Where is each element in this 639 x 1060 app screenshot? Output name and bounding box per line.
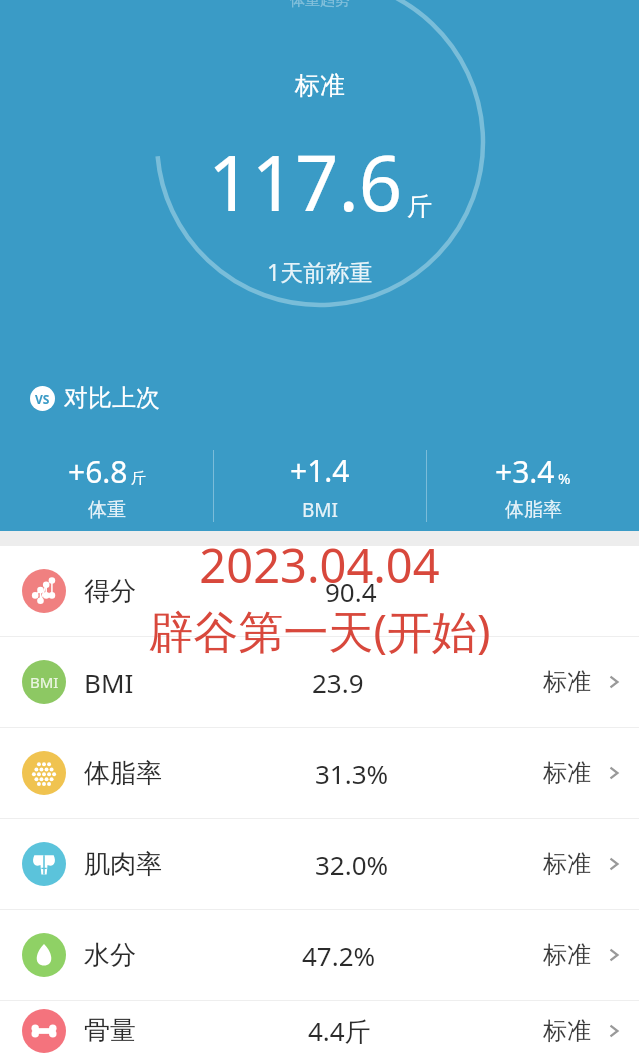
staticText: 标准 xyxy=(543,667,591,697)
staticText: 32.0% xyxy=(315,847,389,882)
staticText: +1.4 xyxy=(290,450,350,491)
staticText: BMI xyxy=(84,665,134,700)
button[interactable]: 体脂率 xyxy=(0,728,639,818)
staticText: 体脂率 xyxy=(505,498,562,522)
staticText: 1天前称重 xyxy=(267,256,373,287)
staticText: 标准 xyxy=(543,849,591,879)
staticText: BMI xyxy=(30,672,59,692)
button[interactable]: 骨量 xyxy=(0,1001,639,1060)
staticText: 标准 xyxy=(543,758,591,788)
staticText: % xyxy=(558,468,571,488)
staticText: 23.9 xyxy=(312,665,364,700)
button[interactable]: 肌肉率 xyxy=(0,819,639,909)
staticText: 肌肉率 xyxy=(84,848,162,881)
button[interactable]: 得分 xyxy=(0,546,639,636)
staticText: 31.3% xyxy=(315,756,389,791)
staticText: 47.2% xyxy=(302,938,376,973)
staticText: 水分 xyxy=(84,939,136,972)
staticText: 2023.04.04 xyxy=(199,533,440,597)
staticText: 对比上次 xyxy=(64,383,160,413)
staticText: 辟谷第一天(开始) xyxy=(148,600,491,661)
staticText: BMI xyxy=(302,497,339,523)
staticText: 90.4 xyxy=(325,574,377,609)
staticText: 斤 xyxy=(131,469,146,488)
button[interactable]: BMI xyxy=(0,637,639,727)
staticText: +6.8 xyxy=(68,451,128,492)
staticText: 标准 xyxy=(295,70,345,101)
staticText: 体脂率 xyxy=(84,757,162,790)
staticText: 体重趋势 xyxy=(290,0,350,10)
staticText: 标准 xyxy=(543,1016,591,1046)
button[interactable]: 水分 xyxy=(0,910,639,1000)
staticText: 骨量 xyxy=(84,1014,136,1047)
staticText: +3.4 xyxy=(495,451,555,492)
staticText: 标准 xyxy=(543,940,591,970)
staticText: 4.4斤 xyxy=(308,1013,371,1049)
staticText: 得分 xyxy=(84,575,136,608)
staticText: 117.6 xyxy=(208,130,403,234)
staticText: 斤 xyxy=(407,191,432,222)
staticText: VS xyxy=(35,391,50,407)
staticText: 体重 xyxy=(88,498,126,522)
